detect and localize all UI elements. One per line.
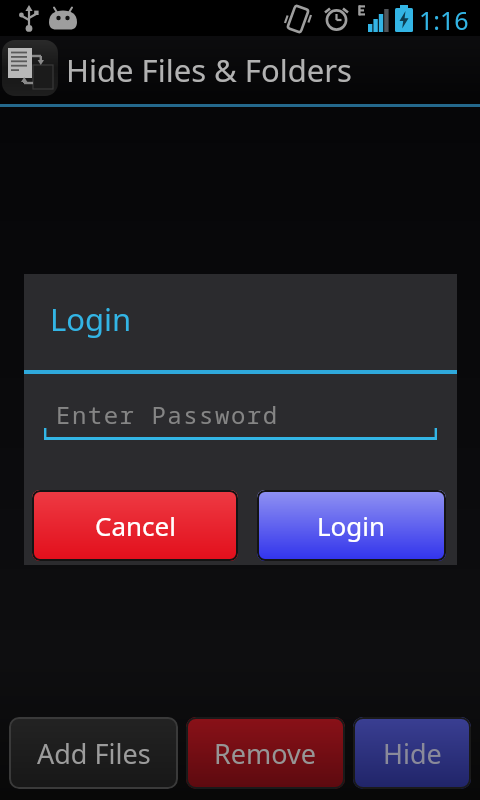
staticText: Add Files [37,735,151,772]
staticText: Hide [383,735,442,772]
staticText: Login [317,508,386,543]
button[interactable]: Hide [353,717,471,789]
button[interactable]: Cancel [32,490,238,561]
staticText: 1:16 [419,3,469,37]
staticText: Remove [214,735,317,772]
button[interactable]: Login [257,490,446,561]
button[interactable]: Add Files [9,717,178,789]
staticText: Enter Password [56,398,279,431]
staticText: Hide Files & Folders [66,49,352,91]
button[interactable]: Remove [186,717,345,789]
staticText: Cancel [95,508,176,543]
staticText: Login [50,298,132,340]
